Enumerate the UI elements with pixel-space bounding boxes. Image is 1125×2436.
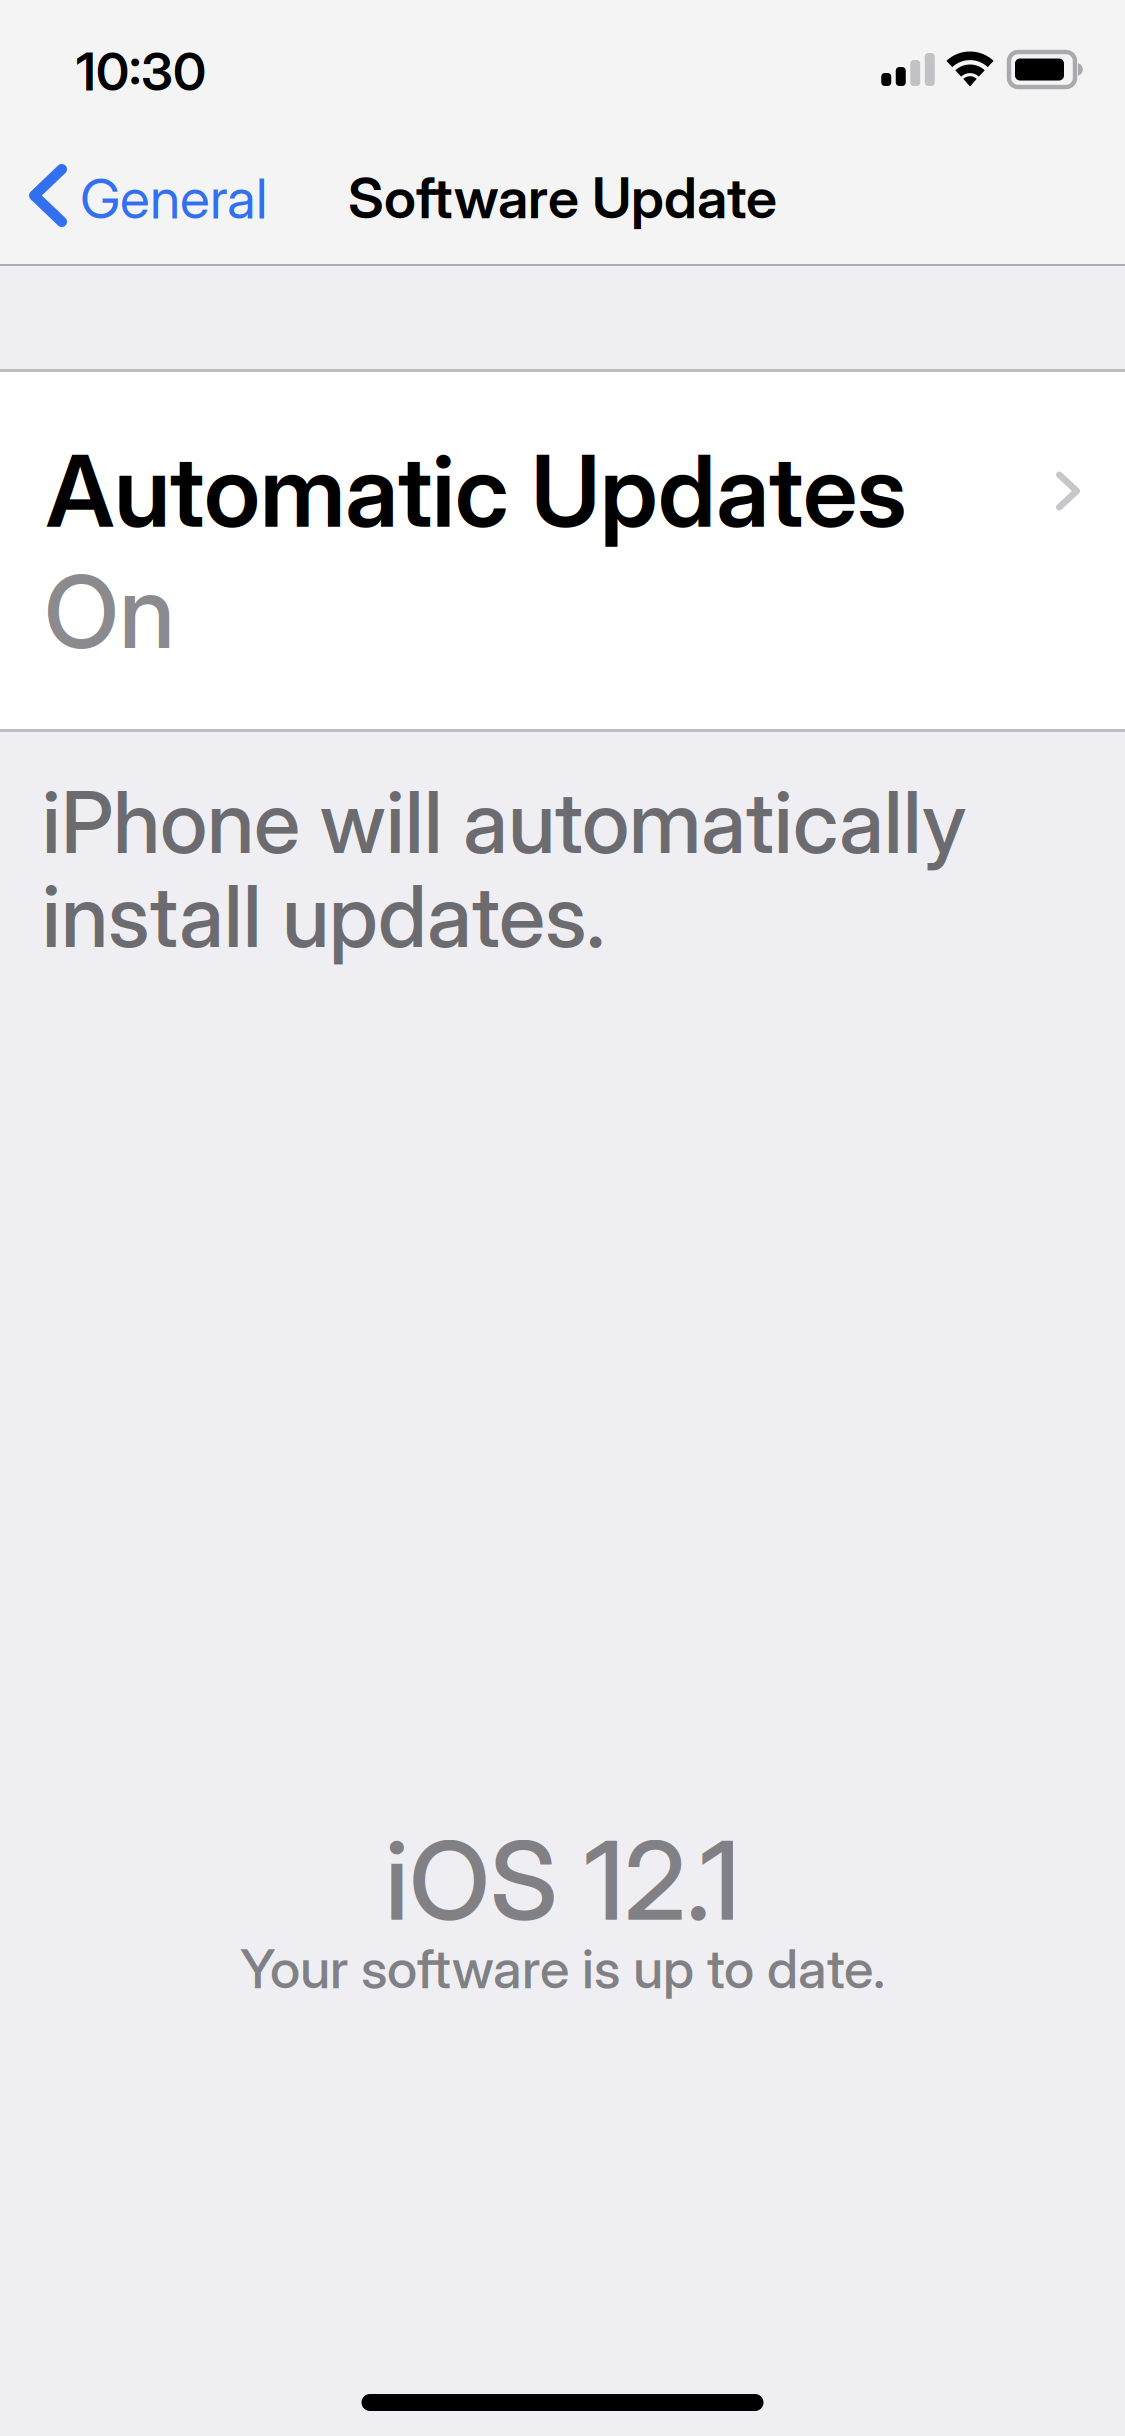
staticText: iOS 12.1 [385, 1815, 740, 1946]
button[interactable]: General [0, 132, 288, 264]
staticText: iPhone will automatically [42, 771, 967, 873]
staticText: Automatic Updates [46, 432, 907, 550]
staticText: Software Update [348, 164, 777, 232]
button[interactable]: Automatic Updates [0, 372, 1125, 729]
staticText: General [80, 165, 267, 232]
staticText: On [44, 551, 175, 672]
staticText: 10:30 [76, 40, 206, 103]
staticText: Your software is up to date. [240, 1936, 885, 2001]
staticText: install updates. [42, 865, 605, 967]
